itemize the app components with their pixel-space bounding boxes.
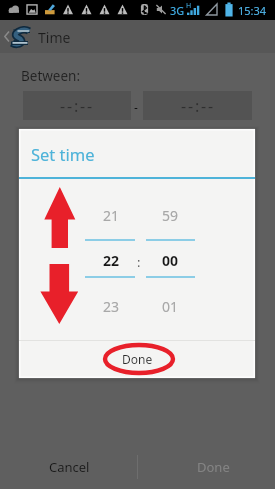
staticText: 3G [170,3,185,18]
staticText: 01 [162,297,179,315]
staticText: Set time [31,143,95,165]
staticText: 22 [103,251,120,269]
staticText: --:-- [60,95,94,117]
button[interactable]: 21 [87,206,135,224]
staticText: 59 [162,206,179,224]
staticText: 15:34 [238,3,267,18]
button[interactable]: Back [0,20,34,53]
button[interactable]: 22 [87,251,135,269]
staticText: 23 [103,297,120,315]
staticText: 21 [103,206,120,224]
staticText: - [134,99,138,115]
staticText: H [186,1,192,11]
staticText: 00 [162,251,179,269]
staticText: Done [122,351,153,367]
staticText: : [137,253,141,271]
staticText: Between: [21,67,81,85]
staticText: Time [38,28,71,47]
staticText: Done [197,458,230,476]
button[interactable]: 00 [146,251,195,269]
button[interactable]: 59 [146,206,195,224]
button[interactable]: Done [19,341,255,377]
button[interactable]: Cancel [0,445,137,489]
staticText: Cancel [49,458,90,476]
staticText: --:-- [181,95,215,117]
button[interactable]: Done [138,445,275,489]
button[interactable]: 01 [146,297,195,315]
button[interactable]: 23 [87,297,135,315]
